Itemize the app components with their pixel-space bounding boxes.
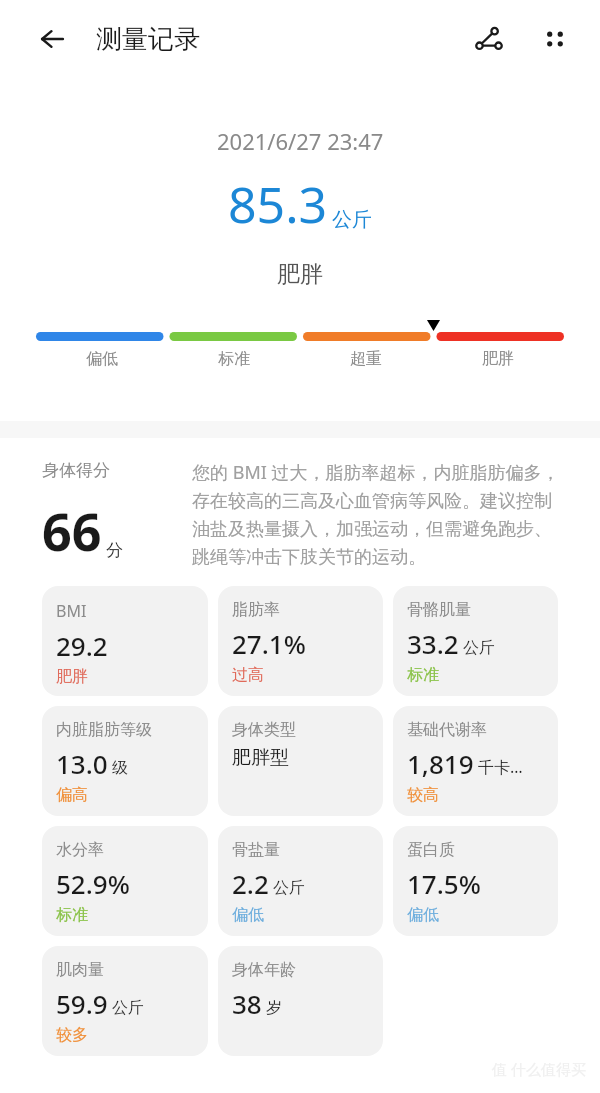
staticText: 肥胖 (482, 349, 514, 369)
button[interactable]: BMI (42, 586, 208, 696)
staticText: 测量记录 (96, 23, 200, 56)
staticText: 身体类型 (232, 720, 296, 740)
staticText: 肥胖 (277, 260, 323, 289)
staticText: 公斤 (332, 207, 372, 232)
staticText: 2.2 (232, 866, 269, 901)
staticText: 13.0 (56, 746, 108, 781)
staticText: 值 什么值得买 (492, 1059, 586, 1079)
staticText: 标准 (218, 349, 250, 369)
staticText: 内脏脂肪等级 (56, 720, 152, 740)
button[interactable]: 肌肉量 (42, 946, 208, 1056)
staticText: 公斤 (463, 638, 495, 658)
staticText: 身体年龄 (232, 960, 296, 980)
button[interactable]: 脂肪率 (218, 586, 383, 696)
button[interactable]: More options (532, 16, 578, 62)
staticText: 标准 (407, 665, 439, 685)
staticText: 偏低 (232, 905, 264, 925)
button[interactable]: 蛋白质 (393, 826, 558, 936)
button[interactable]: 内脏脂肪等级 (42, 706, 208, 816)
staticText: 肥胖型 (232, 746, 289, 770)
staticText: 级 (112, 758, 128, 778)
staticText: 岁 (266, 998, 282, 1018)
staticText: BMI (56, 600, 87, 622)
staticText: 水分率 (56, 840, 104, 860)
staticText: 59.9 (56, 986, 108, 1021)
staticText: 超重 (350, 349, 382, 369)
staticText: 骨盐量 (232, 840, 280, 860)
staticText: 蛋白质 (407, 840, 455, 860)
staticText: 66 (42, 495, 102, 566)
staticText: 偏高 (56, 785, 88, 805)
staticText: 公斤 (273, 878, 305, 898)
button[interactable]: 身体年龄 (218, 946, 383, 1056)
staticText: 偏低 (407, 905, 439, 925)
button[interactable]: 骨骼肌量 (393, 586, 558, 696)
staticText: 肥胖 (56, 667, 88, 687)
staticText: 偏低 (86, 349, 118, 369)
staticText: 过高 (232, 665, 264, 685)
staticText: 2021/6/27 23:47 (217, 126, 384, 156)
staticText: 标准 (56, 905, 88, 925)
button[interactable]: 基础代谢率 (393, 706, 558, 816)
staticText: 33.2 (407, 626, 459, 661)
staticText: 您的 BMI 过大，脂肪率超标，内脏脂肪偏多，存在较高的三高及心血管病等风险。建… (192, 460, 566, 568)
button[interactable]: 身体类型 (218, 706, 383, 816)
staticText: 29.2 (56, 628, 108, 663)
staticText: 分 (106, 540, 123, 561)
staticText: 千卡… (478, 756, 523, 778)
button[interactable]: Share (466, 16, 512, 62)
staticText: 38 (232, 986, 262, 1021)
staticText: 85.3 (228, 170, 328, 238)
staticText: 身体得分 (42, 460, 110, 481)
staticText: 基础代谢率 (407, 720, 487, 740)
staticText: 肌肉量 (56, 960, 104, 980)
staticText: 1,819 (407, 746, 474, 781)
button[interactable]: Back (30, 17, 74, 61)
staticText: 较多 (56, 1025, 88, 1045)
staticText: 较高 (407, 785, 439, 805)
staticText: 公斤 (112, 998, 144, 1018)
button[interactable]: 水分率 (42, 826, 208, 936)
staticText: 骨骼肌量 (407, 600, 471, 620)
staticText: 脂肪率 (232, 600, 280, 620)
staticText: 17.5% (407, 866, 481, 901)
staticText: 52.9% (56, 866, 130, 901)
button[interactable]: 骨盐量 (218, 826, 383, 936)
staticText: 27.1% (232, 626, 306, 661)
